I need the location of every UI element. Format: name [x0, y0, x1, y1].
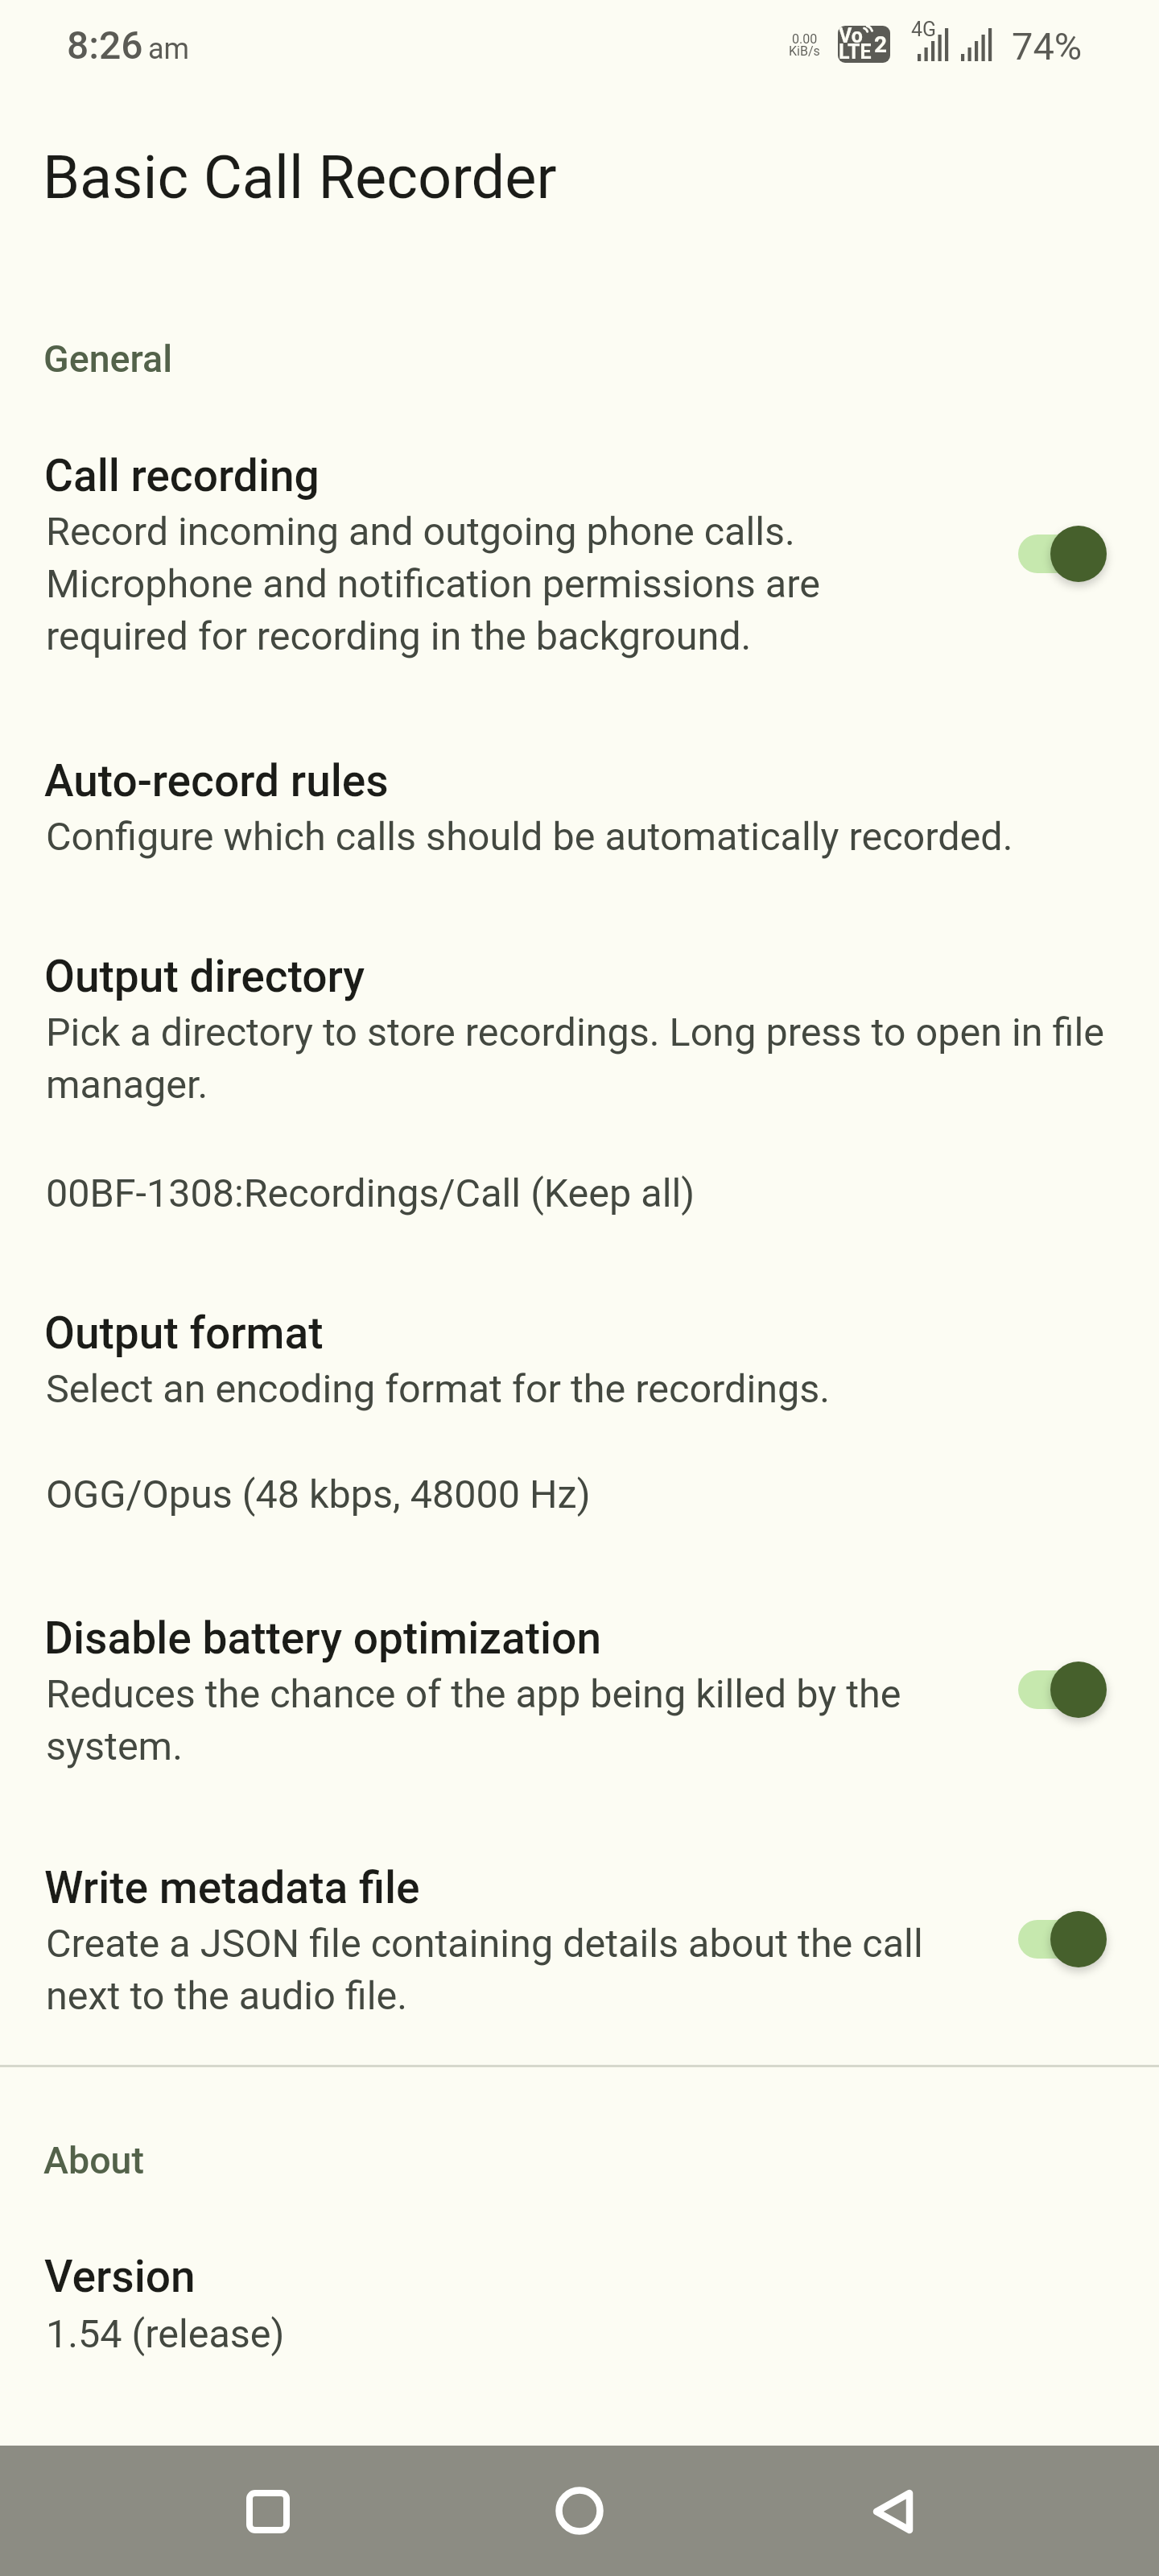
button[interactable]: Back — [797, 2446, 990, 2576]
staticText: Reduces the chance of the app being kill… — [46, 1666, 947, 1771]
button[interactable] — [0, 701, 1159, 901]
staticText: 1.54 (release) — [46, 2306, 1159, 2359]
staticText: 74% — [1012, 24, 1159, 69]
button[interactable]: Recent apps — [171, 2446, 365, 2576]
button[interactable]: Home — [483, 2446, 676, 2576]
staticText: 00BF-1308:Recordings/Call (Keep all) — [46, 1166, 1159, 1218]
staticText: 0.00 — [792, 31, 1159, 47]
staticText: Create a JSON file containing details ab… — [46, 1916, 947, 2021]
button[interactable] — [0, 396, 1159, 700]
button[interactable] — [0, 90, 1159, 243]
staticText: Call recording — [44, 450, 1159, 502]
button[interactable]: Toggle setting — [1002, 1641, 1123, 1738]
staticText: Disable battery optimization — [44, 1612, 1159, 1665]
button[interactable] — [0, 1253, 1159, 1558]
staticText: About — [43, 2135, 1159, 2183]
staticText: KiB/s — [789, 43, 1159, 59]
staticText: 2 — [874, 33, 890, 57]
staticText: Vo — [839, 26, 890, 47]
button[interactable] — [0, 1808, 1159, 2060]
staticText: Write metadata file — [44, 1862, 1159, 1914]
button[interactable]: Toggle setting — [1002, 1891, 1123, 1988]
staticText: Select an encoding format for the record… — [46, 1361, 1121, 1414]
staticText: Auto-record rules — [44, 755, 1159, 807]
staticText: Version — [44, 2251, 1159, 2303]
staticText: 8:26 — [67, 23, 1159, 68]
button[interactable] — [0, 897, 1159, 1257]
staticText: LTE — [839, 42, 890, 63]
staticText: Output format — [44, 1307, 1159, 1360]
staticText: Configure which calls should be automati… — [46, 809, 1121, 861]
staticText: 4G — [911, 19, 1159, 41]
staticText: General — [43, 333, 1159, 382]
button[interactable] — [0, 1558, 1159, 1810]
staticText: Basic Call Recorder — [43, 144, 1159, 213]
button[interactable]: Toggle setting — [1002, 506, 1123, 602]
staticText: Pick a directory to store recordings. Lo… — [46, 1005, 1121, 1109]
staticText: Record incoming and outgoing phone calls… — [46, 504, 947, 661]
button[interactable] — [0, 2197, 1159, 2398]
staticText: am — [148, 32, 1159, 66]
staticText: OGG/Opus (48 kbps, 48000 Hz) — [46, 1467, 1159, 1519]
staticText: Output directory — [44, 951, 1159, 1003]
